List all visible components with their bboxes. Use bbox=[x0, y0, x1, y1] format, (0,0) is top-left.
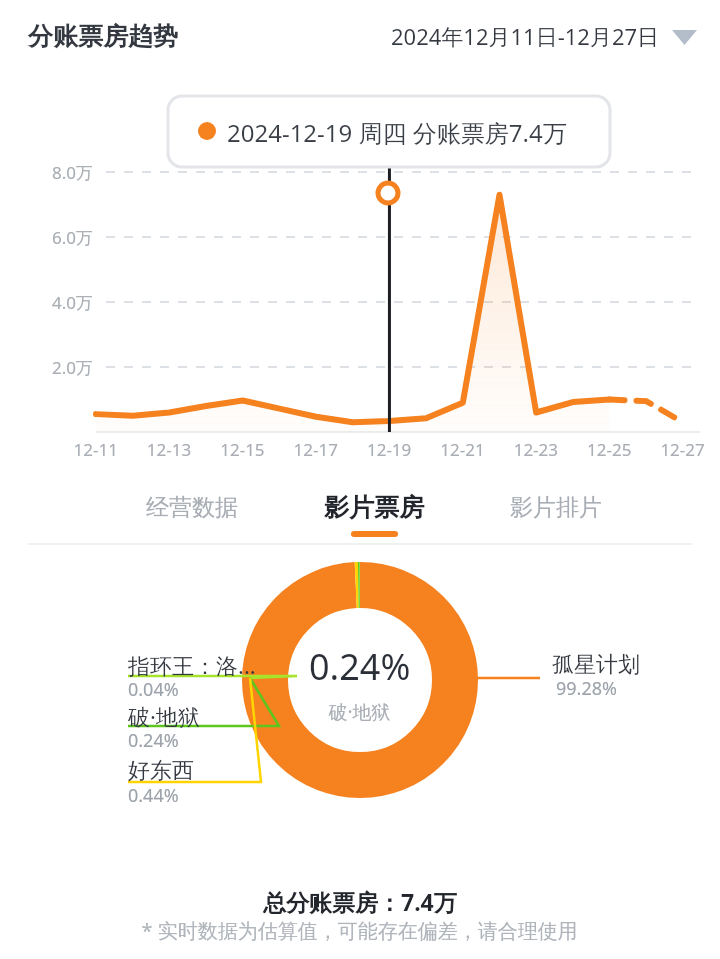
button[interactable] bbox=[240, 478, 480, 536]
button[interactable]: 选择日期范围 2024年12月11日-12月27日 bbox=[430, 12, 708, 60]
button[interactable] bbox=[480, 478, 720, 536]
button[interactable] bbox=[0, 478, 240, 536]
